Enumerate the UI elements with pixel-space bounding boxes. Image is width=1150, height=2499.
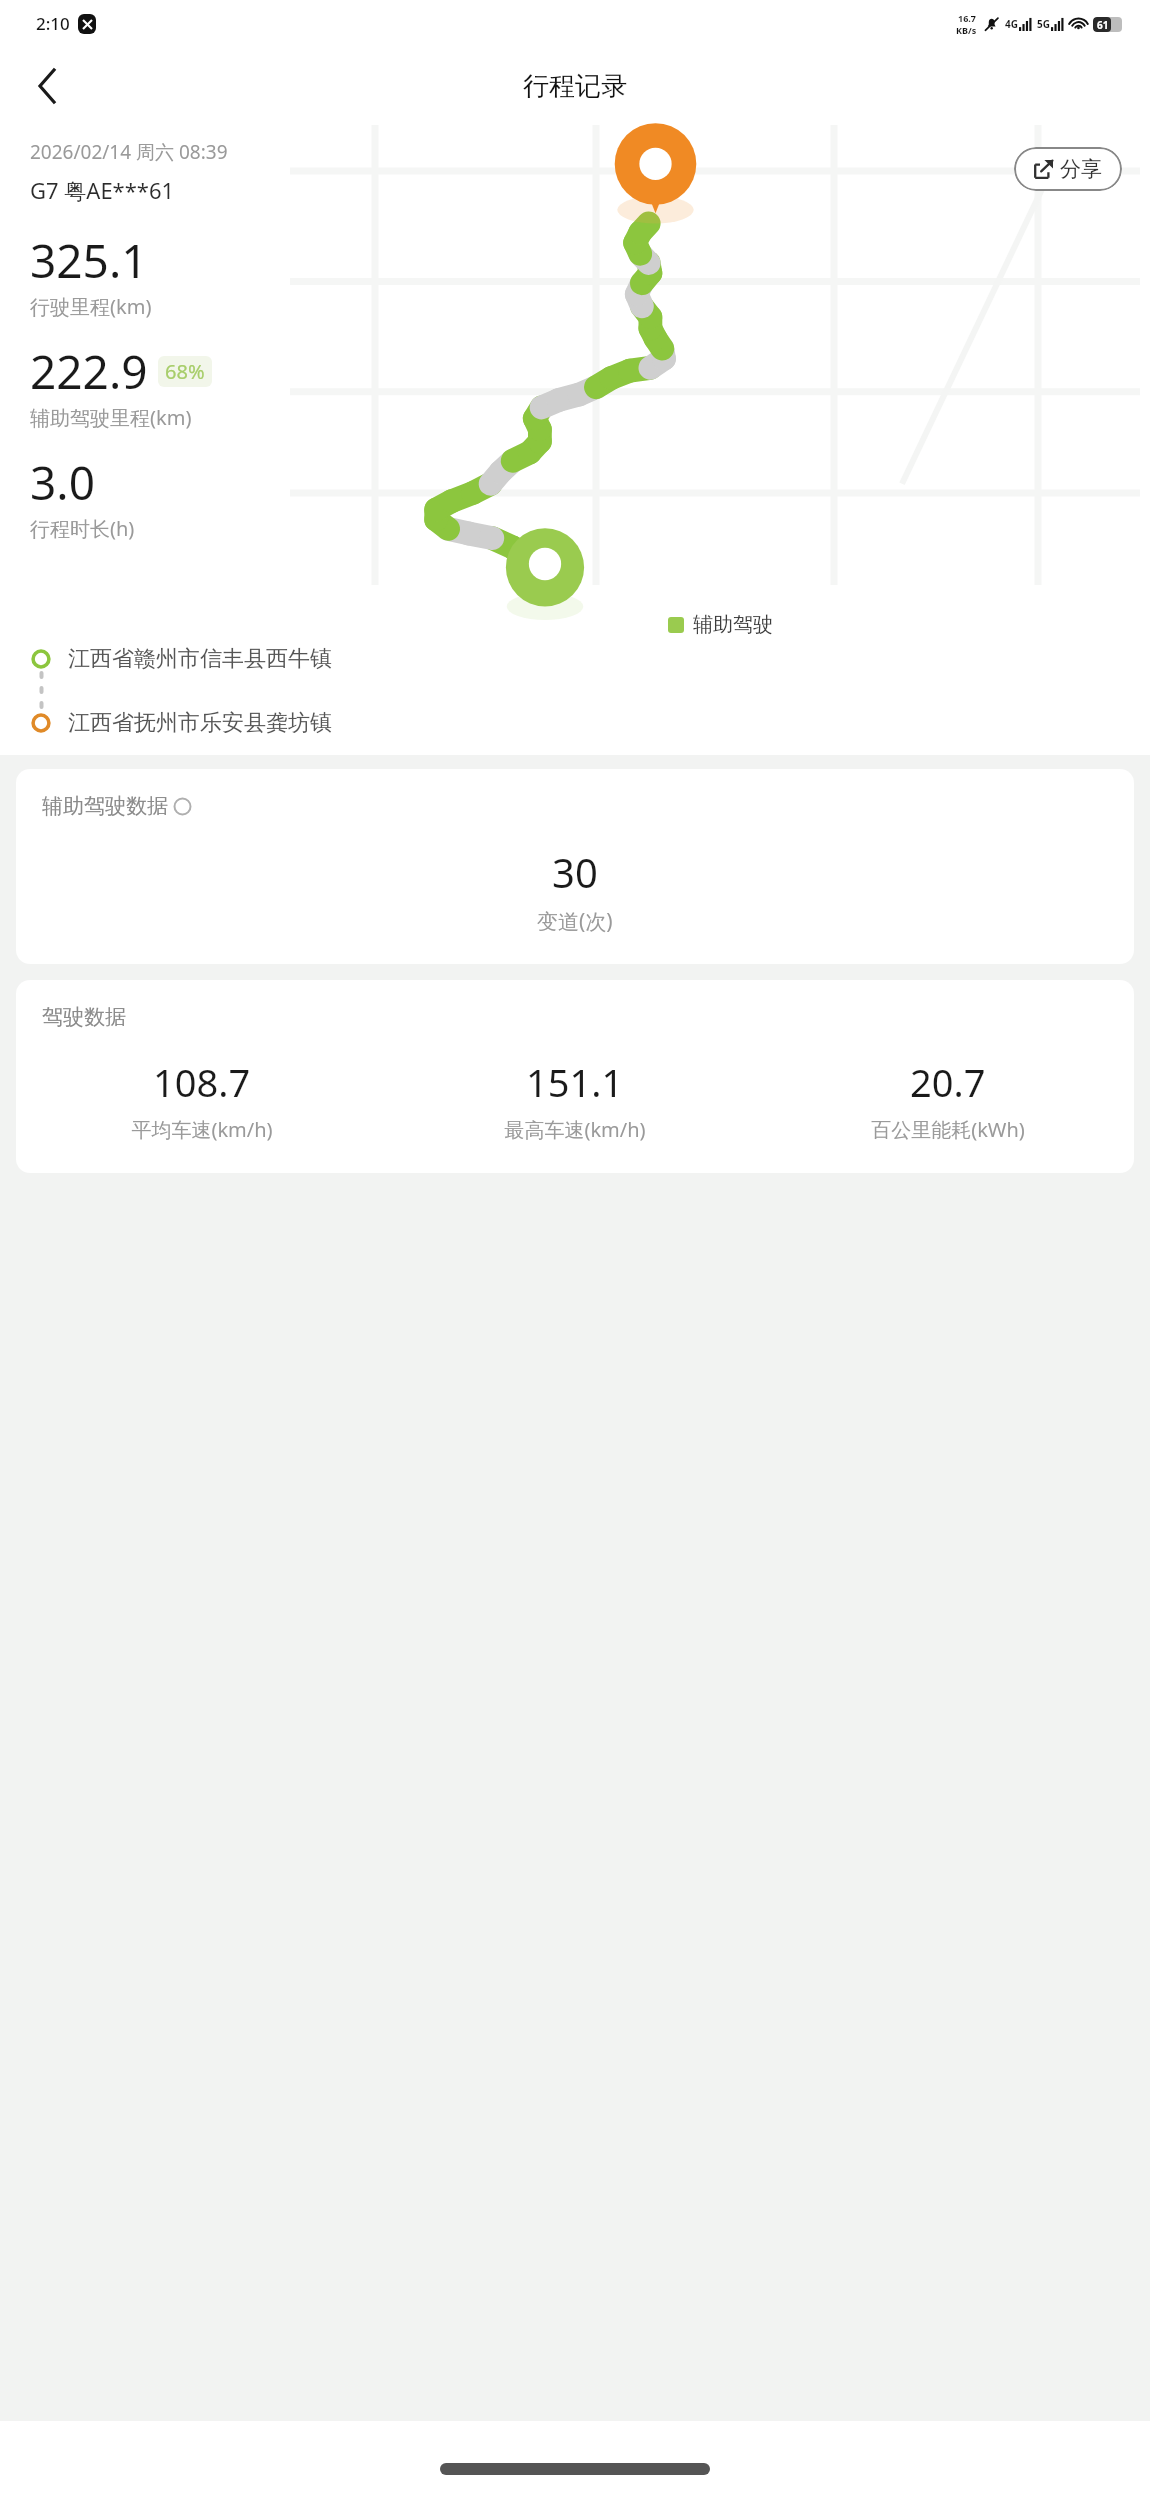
staticText: 151.1	[526, 1056, 624, 1108]
staticText: 3.0	[30, 451, 95, 514]
staticText: 百公里能耗(kWh)	[871, 1116, 1025, 1143]
staticText: 108.7	[153, 1056, 251, 1108]
staticText: 分享	[1060, 156, 1102, 182]
staticText: 江西省赣州市信丰县西牛镇	[68, 645, 332, 673]
staticText: 行驶里程(km)	[30, 293, 152, 320]
staticText: 222.9	[30, 340, 148, 403]
staticText: KB/s	[956, 24, 977, 36]
staticText: 4G	[1005, 17, 1018, 31]
staticText: 行程记录	[523, 70, 627, 103]
button[interactable]: 分享	[1014, 147, 1122, 191]
staticText: 5G	[1037, 17, 1050, 31]
staticText: 20.7	[910, 1056, 986, 1108]
button[interactable]: 辅助驾驶数据	[16, 769, 1134, 964]
button[interactable]: 驾驶数据	[16, 980, 1134, 1173]
staticText: 325.1	[30, 229, 148, 292]
button[interactable]: Back	[22, 60, 74, 112]
staticText: 61	[1097, 18, 1109, 32]
staticText: 辅助驾驶里程(km)	[30, 404, 192, 431]
staticText: 30	[552, 845, 598, 899]
staticText: 驾驶数据	[42, 1004, 126, 1030]
staticText: 变道(次)	[537, 907, 613, 936]
staticText: 68%	[165, 358, 205, 385]
staticText: G7 粤AE***61	[30, 175, 175, 205]
staticText: 2:10	[36, 12, 70, 35]
staticText: 辅助驾驶数据	[42, 793, 168, 819]
staticText: 16.7	[958, 12, 976, 24]
staticText: 2026/02/14 周六 08:39	[30, 139, 228, 165]
staticText: 辅助驾驶	[693, 612, 773, 637]
staticText: 最高车速(km/h)	[504, 1116, 646, 1143]
staticText: 平均车速(km/h)	[131, 1116, 273, 1143]
staticText: 江西省抚州市乐安县龚坊镇	[68, 709, 332, 737]
staticText: 行程时长(h)	[30, 515, 135, 542]
